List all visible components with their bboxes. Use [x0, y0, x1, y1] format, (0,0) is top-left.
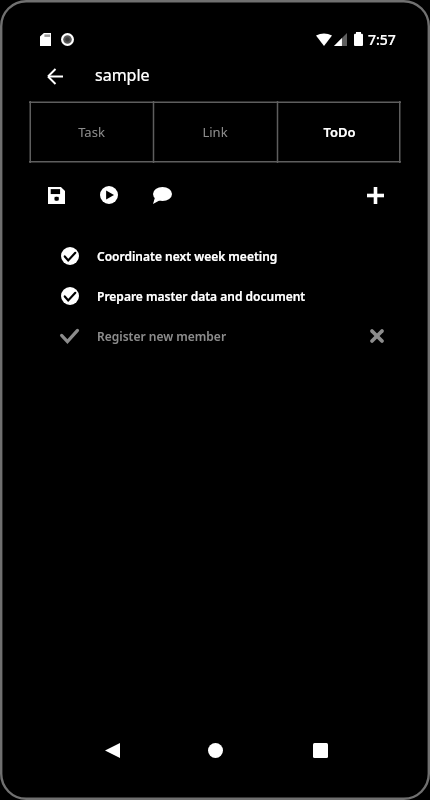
button[interactable]: Comment	[148, 181, 176, 209]
button[interactable]: Add	[361, 181, 389, 209]
button[interactable]: Save	[42, 181, 70, 209]
staticText: Prepare master data and document	[97, 288, 306, 304]
button[interactable]: Prepare master data and document	[0, 276, 430, 316]
button[interactable]: ToDo	[277, 101, 401, 163]
button[interactable]: Remove	[362, 321, 392, 351]
button[interactable]: Link	[153, 101, 277, 163]
button[interactable]: Play	[95, 181, 123, 209]
staticText: sample	[95, 64, 150, 86]
button[interactable]: Recent apps	[300, 730, 340, 770]
button[interactable]: Home	[195, 730, 235, 770]
staticText: Register new member	[97, 328, 227, 344]
button[interactable]: Coordinate next week meeting	[0, 236, 430, 276]
button[interactable]: Task	[29, 101, 153, 163]
staticText: Task	[78, 123, 105, 141]
staticText: 7:57	[368, 30, 396, 49]
staticText: Link	[202, 123, 228, 141]
button[interactable]: Back	[92, 730, 132, 770]
staticText: ToDo	[323, 123, 356, 141]
staticText: Coordinate next week meeting	[97, 248, 278, 264]
button[interactable]: Register new member	[0, 316, 430, 356]
button[interactable]: Navigate up	[35, 56, 75, 96]
